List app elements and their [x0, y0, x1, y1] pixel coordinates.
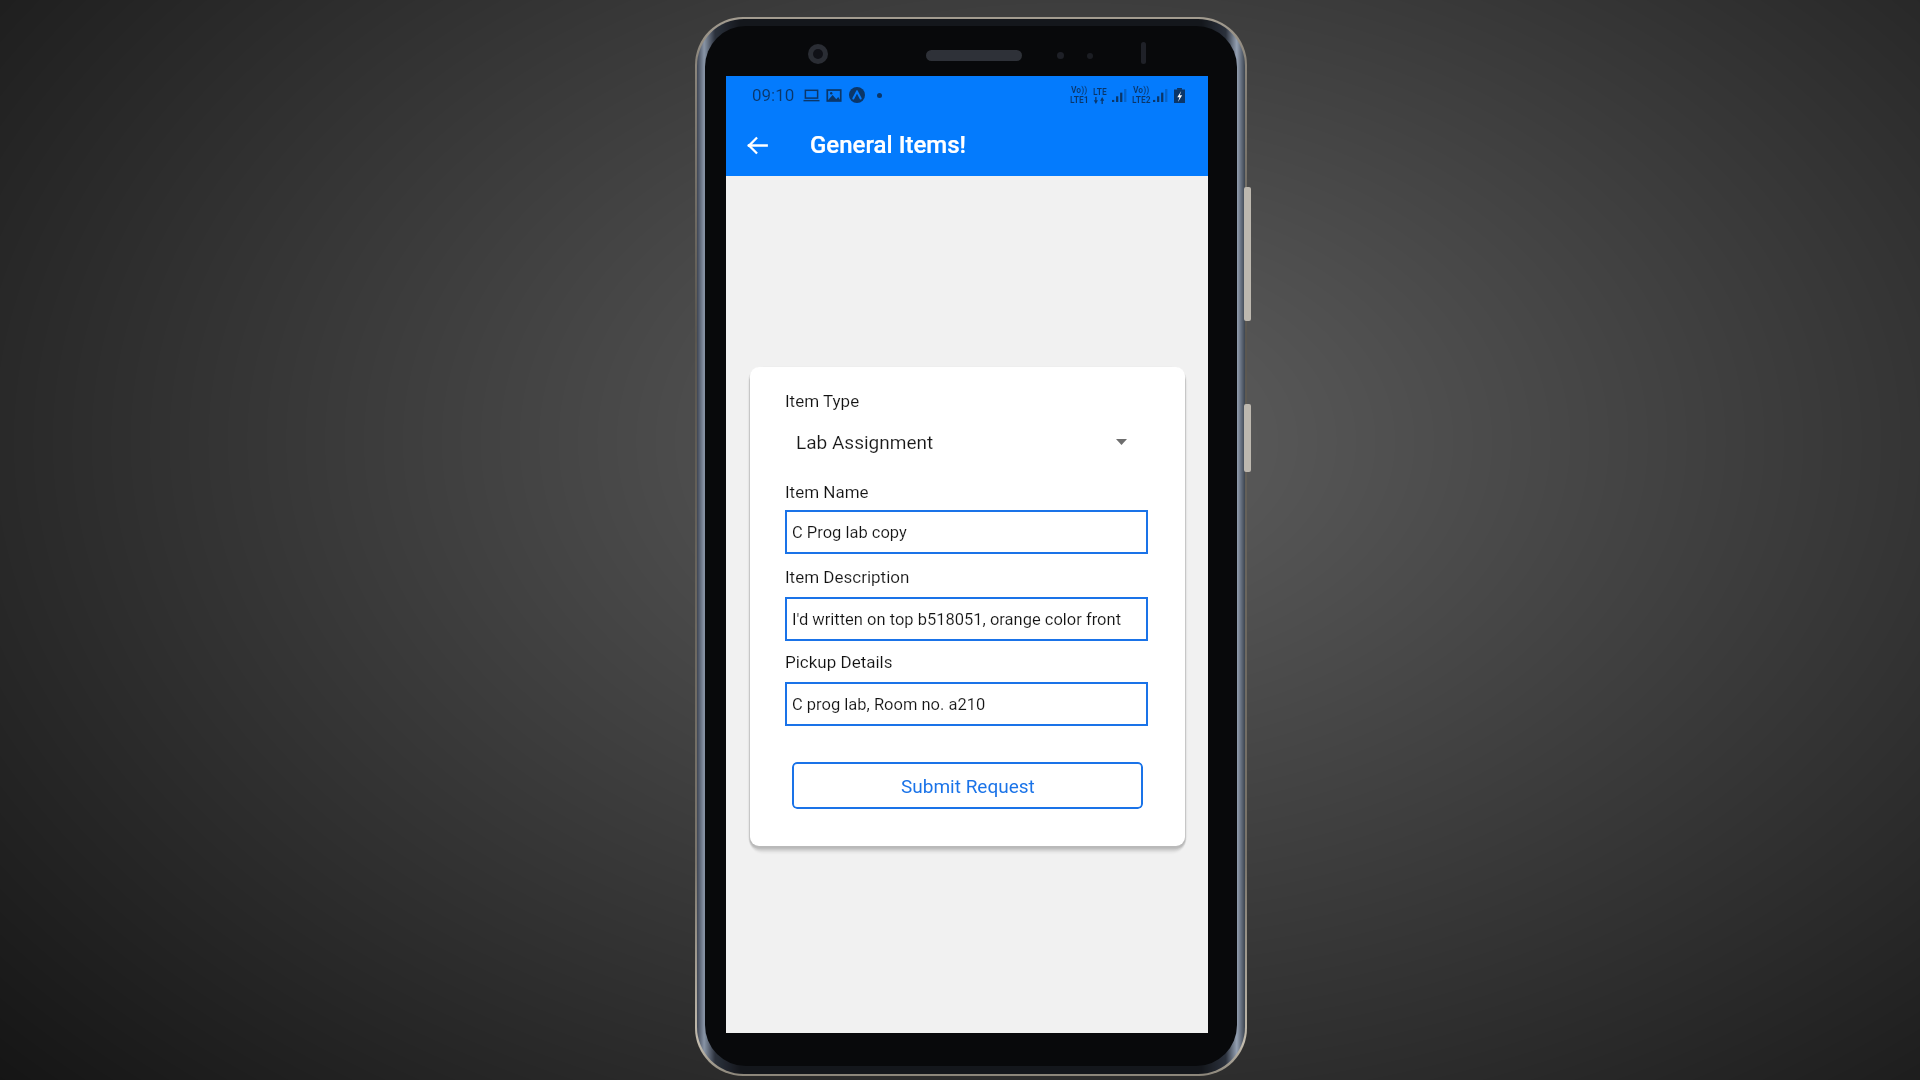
staticText: Lab Assignment [796, 431, 934, 453]
button[interactable]: Submit Request [792, 762, 1143, 809]
button[interactable]: Lab Assignment [785, 424, 1148, 459]
staticText: Submit Request [901, 775, 1035, 797]
button[interactable]: I'd written on top b518051, orange color… [785, 597, 1148, 641]
staticText: General Items! [810, 131, 967, 159]
staticText: Vo)) [1071, 85, 1088, 95]
staticText: Pickup Details [785, 652, 893, 672]
staticText: LTE2 [1132, 95, 1151, 105]
staticText: Item Type [785, 391, 860, 411]
staticText: I'd written on top b518051, orange color… [792, 610, 1122, 629]
button[interactable]: Back [738, 126, 776, 164]
staticText: Vo)) [1133, 85, 1150, 95]
staticText: LTE1 [1070, 95, 1089, 105]
staticText: LTE [1093, 87, 1107, 97]
button[interactable]: C prog lab, Room no. a210 [785, 682, 1148, 726]
staticText: Item Description [785, 567, 910, 587]
staticText: C Prog lab copy [792, 523, 907, 542]
staticText: Item Name [785, 482, 869, 502]
button[interactable]: C Prog lab copy [785, 510, 1148, 554]
staticText: C prog lab, Room no. a210 [792, 695, 986, 714]
staticText: 09:10 [752, 85, 795, 105]
